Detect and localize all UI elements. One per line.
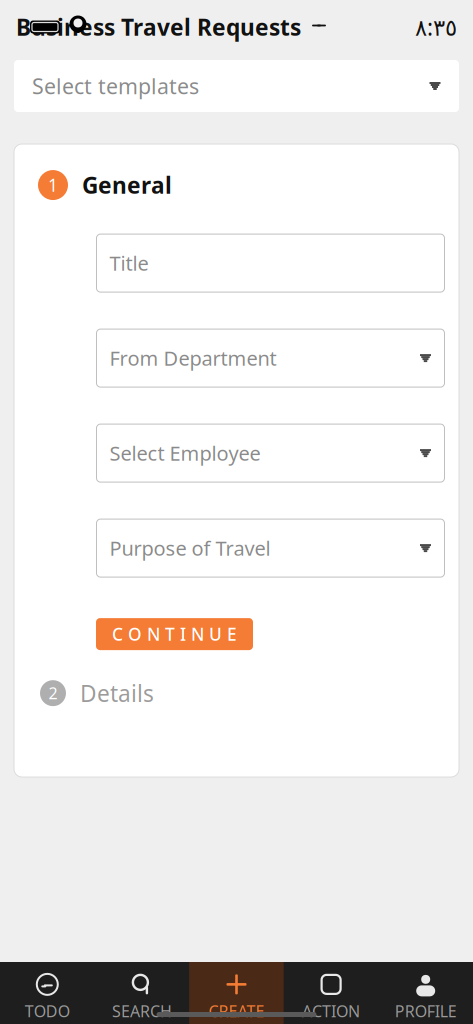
button[interactable]: Select Employee: [96, 424, 444, 482]
staticText: SEARCH: [112, 1000, 172, 1022]
button[interactable]: CREATE: [189, 962, 284, 1024]
staticText: ACTION: [302, 1000, 360, 1022]
button[interactable]: PROFILE: [378, 962, 473, 1024]
staticText: TODO: [25, 1000, 70, 1022]
staticText: 2: [48, 682, 57, 704]
staticText: PROFILE: [395, 1000, 457, 1022]
staticText: General: [82, 170, 172, 200]
staticText: Details: [80, 678, 154, 708]
staticText: Select Employee: [109, 440, 260, 466]
button[interactable]: C O N T I N U E: [96, 618, 253, 650]
button[interactable]: Title: [96, 234, 444, 292]
button[interactable]: TODO: [0, 962, 95, 1024]
staticText: Select templates: [32, 72, 199, 100]
button[interactable]: Purpose of Travel: [96, 519, 444, 577]
button[interactable]: ACTION: [284, 962, 378, 1024]
staticText: CREATE: [208, 1000, 264, 1022]
button[interactable]: From Department: [96, 329, 444, 387]
staticText: ٨:٣٥: [415, 12, 457, 42]
button[interactable]: Business Travel Requests: [16, 12, 327, 42]
button[interactable]: Select templates: [14, 60, 459, 112]
staticText: Purpose of Travel: [109, 535, 270, 561]
staticText: 1: [48, 173, 58, 196]
staticText: Business Travel Requests: [16, 12, 301, 42]
staticText: Title: [109, 250, 148, 276]
staticText: C O N T I N U E: [112, 623, 237, 646]
button[interactable]: SEARCH: [95, 962, 189, 1024]
staticText: From Department: [109, 345, 276, 371]
